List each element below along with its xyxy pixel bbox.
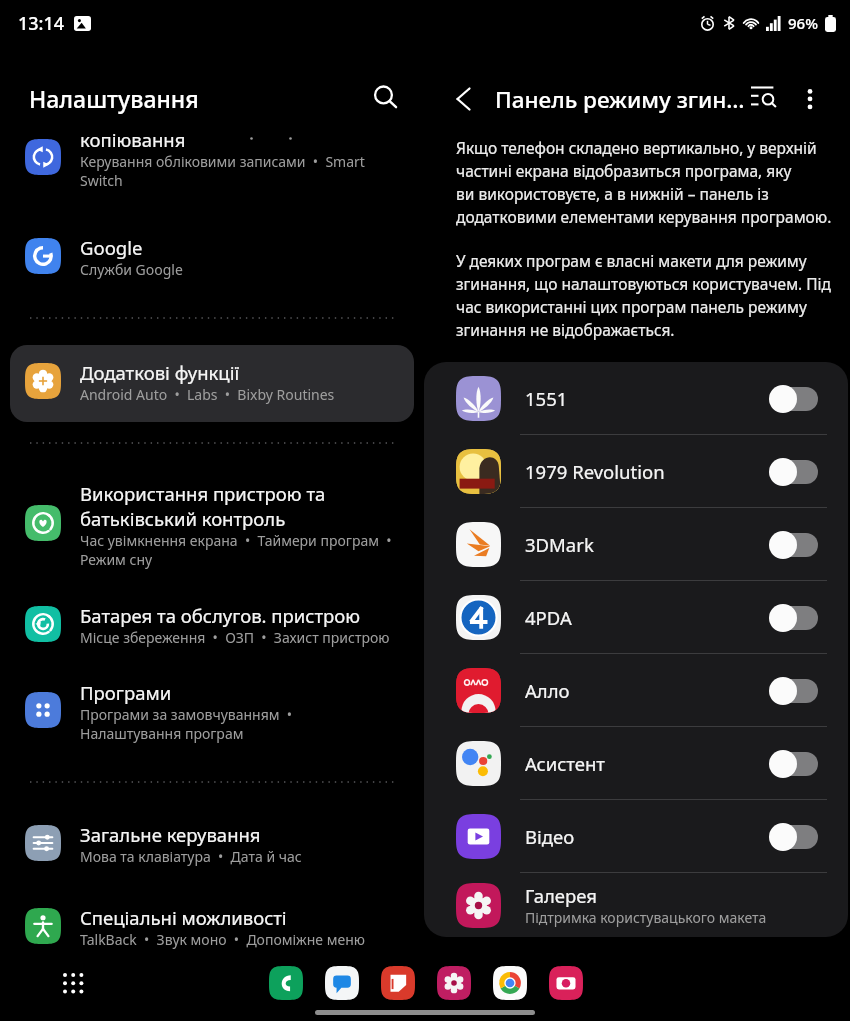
staticText: Якщо телефон складено вертикально, у вер… <box>456 137 832 228</box>
button[interactable]: Алло <box>424 654 848 727</box>
button[interactable]: Phone <box>269 966 303 1000</box>
staticText: Підтримка користувацького макета <box>525 908 767 927</box>
button[interactable]: Toggle <box>764 817 824 857</box>
button[interactable] <box>0 597 425 651</box>
button[interactable]: Відео <box>424 800 848 873</box>
staticText: Час увімкнення екрана • Таймери програм … <box>80 531 392 550</box>
staticText: Мова та клавіатура • Дата й час <box>80 847 302 866</box>
button[interactable]: Camera <box>549 966 583 1000</box>
staticText: 4PDA <box>525 605 572 630</box>
button[interactable] <box>10 345 414 422</box>
staticText: копіювання <box>80 127 186 152</box>
button[interactable]: Toggle <box>764 598 824 638</box>
button[interactable] <box>0 816 425 870</box>
button[interactable]: Chrome <box>493 966 527 1000</box>
staticText: Асистент <box>525 751 605 776</box>
button[interactable]: Toggle <box>764 525 824 565</box>
button[interactable]: Search list <box>741 77 785 121</box>
button[interactable]: Back <box>442 77 486 121</box>
staticText: Панель режиму згин… <box>495 84 745 115</box>
staticText: Алло <box>525 678 570 703</box>
button[interactable]: Messages <box>325 966 359 1000</box>
button[interactable]: Асистент <box>424 727 848 800</box>
button[interactable] <box>0 475 425 571</box>
staticText: Керування обліковими записами • Smart <box>80 152 365 171</box>
staticText: TalkBack • Звук моно • Допоміжне меню <box>80 930 365 949</box>
button[interactable]: Toggle <box>764 744 824 784</box>
button[interactable]: Галерея <box>424 873 848 937</box>
staticText: Android Auto • Labs • Bixby Routines <box>80 385 335 404</box>
button[interactable]: 3DMark <box>424 508 848 581</box>
staticText: Служби Google <box>80 260 183 279</box>
staticText: Додаткові функції <box>80 360 240 385</box>
button[interactable] <box>0 229 425 283</box>
button[interactable]: More options <box>788 77 832 121</box>
button[interactable] <box>0 674 425 747</box>
staticText: 1979 Revolution <box>525 459 665 484</box>
staticText: 1551 <box>525 386 568 411</box>
button[interactable]: Toggle <box>764 671 824 711</box>
button[interactable]: 1979 Revolution <box>424 435 848 508</box>
staticText: Відео <box>525 824 575 849</box>
button[interactable]: 4PDA <box>424 581 848 654</box>
button[interactable]: Search <box>364 76 408 120</box>
staticText: 3DMark <box>525 532 594 557</box>
button[interactable]: Toggle <box>764 452 824 492</box>
staticText: Загальне керування <box>80 822 261 847</box>
staticText: Програми <box>80 680 172 705</box>
staticText: Галерея <box>525 883 597 908</box>
button[interactable]: 1551 <box>424 362 848 435</box>
button[interactable]: Notes <box>381 966 415 1000</box>
staticText: Налаштування <box>29 83 199 114</box>
button[interactable] <box>0 899 425 953</box>
button[interactable]: Gallery <box>437 966 471 1000</box>
staticText: 96% <box>788 13 818 33</box>
staticText: У деяких програм є власні макети для реж… <box>456 250 832 341</box>
staticText: 13:14 <box>18 11 65 36</box>
staticText: Програми за замовчуванням • <box>80 705 293 724</box>
staticText: Налаштування програм <box>80 724 244 743</box>
staticText: Спеціальні можливості <box>80 905 287 930</box>
button[interactable]: Apps <box>62 972 88 998</box>
button[interactable] <box>0 121 425 194</box>
staticText: батьківський контроль <box>80 506 286 531</box>
button[interactable]: Toggle <box>764 379 824 419</box>
staticText: Switch <box>80 171 123 190</box>
staticText: Режим сну <box>80 550 153 569</box>
staticText: Місце збереження • ОЗП • Захист пристрою <box>80 628 390 647</box>
staticText: Батарея та обслугов. пристрою <box>80 603 361 628</box>
staticText: Google <box>80 235 143 260</box>
staticText: Використання пристрою та <box>80 481 326 506</box>
button[interactable] <box>0 354 425 408</box>
